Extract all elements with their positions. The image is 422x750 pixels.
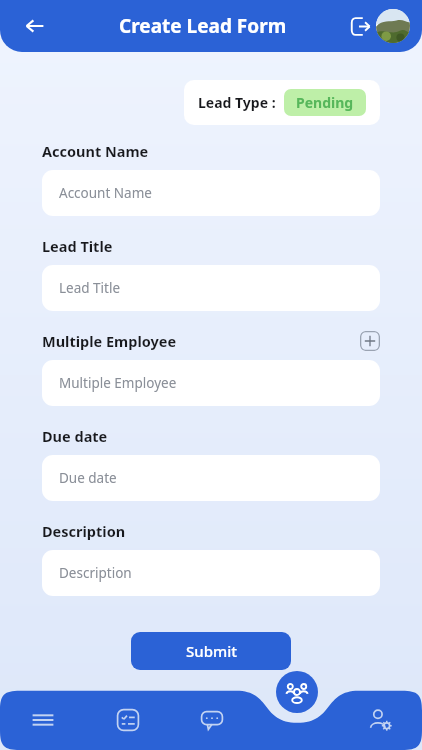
button[interactable]: Account settings [338,698,422,742]
staticText: Create Lead Form [119,13,287,39]
button[interactable]: Add employee [360,331,380,351]
button[interactable]: Account Name [42,170,380,216]
staticText: Description [42,521,126,541]
staticText: Description [59,564,132,582]
staticText: Multiple Employee [59,374,177,392]
staticText: Account Name [59,184,152,202]
button[interactable]: Submit [131,632,291,670]
button[interactable]: Lead Type : [184,80,380,125]
staticText: Due date [59,469,117,487]
button[interactable]: Due date [42,455,380,501]
button[interactable]: Lead Title [42,265,380,311]
staticText: Pending [296,93,354,112]
button[interactable]: Logout [344,10,376,42]
button[interactable]: Tasks [85,698,170,742]
staticText: Lead Type : [198,93,276,112]
staticText: Multiple Employee [42,331,177,351]
button[interactable]: Back [18,9,52,43]
button[interactable]: Description [42,550,380,596]
button[interactable]: Team [276,671,318,713]
button[interactable]: Chat [170,698,254,742]
button[interactable]: Multiple Employee [42,360,380,406]
staticText: Account Name [42,141,149,161]
staticText: Due date [42,426,108,446]
button[interactable]: Menu [0,698,85,742]
button[interactable]: Profile [376,9,410,43]
staticText: Submit [186,641,237,661]
button[interactable]: Team [254,698,338,742]
staticText: Lead Title [59,279,121,297]
staticText: Lead Title [42,236,113,256]
